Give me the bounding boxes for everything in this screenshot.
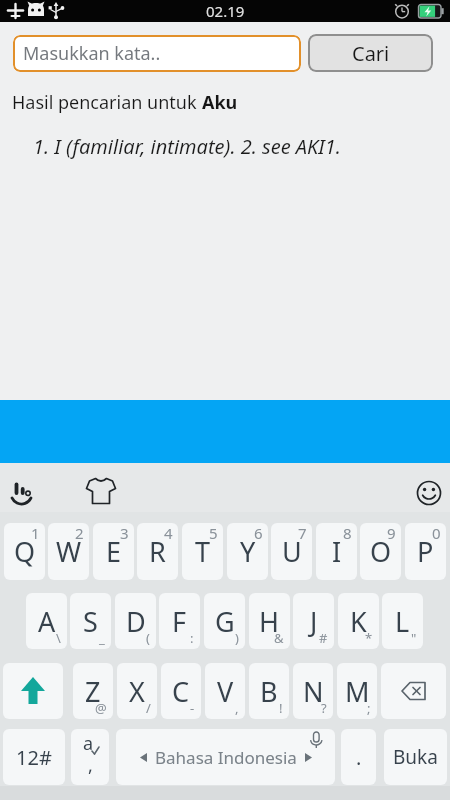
button[interactable]: Cari <box>308 34 433 72</box>
staticText: 4 <box>164 523 173 543</box>
staticText: # <box>319 629 328 647</box>
staticText: * <box>365 629 373 647</box>
button[interactable]: J <box>293 593 334 649</box>
staticText: 1 <box>31 523 40 543</box>
staticText: ? <box>321 699 327 717</box>
button[interactable]: L <box>382 593 423 649</box>
button[interactable]: K <box>338 593 379 649</box>
staticText: B <box>260 673 278 710</box>
staticText: ; <box>367 699 371 717</box>
staticText: X <box>129 673 145 710</box>
button[interactable]: C <box>161 663 201 719</box>
button[interactable]: N <box>293 663 333 719</box>
button[interactable]: V <box>205 663 245 719</box>
button[interactable]: U <box>271 523 312 580</box>
staticText: 2 <box>75 523 84 543</box>
button[interactable]: X <box>117 663 157 719</box>
staticText: 02.19 <box>206 1 245 21</box>
staticText: P <box>417 533 434 570</box>
staticText: 0 <box>432 523 441 543</box>
staticText: Hasil pencarian untuk <box>12 90 202 115</box>
staticText: K <box>350 603 367 640</box>
staticText: 6 <box>254 523 263 543</box>
staticText: 1. I (familiar, intimate). 2. see AKI1. <box>33 133 341 160</box>
staticText: 8 <box>343 523 352 543</box>
staticText: " <box>411 629 417 647</box>
staticText: \ <box>56 629 61 647</box>
button[interactable]: O <box>360 523 401 580</box>
staticText: S <box>83 603 98 640</box>
staticText: : <box>190 629 194 647</box>
staticText: M <box>345 673 370 710</box>
button[interactable]: Y <box>227 523 268 580</box>
button[interactable]: I <box>316 523 357 580</box>
staticText: Aku <box>202 90 238 115</box>
button[interactable]: Z <box>73 663 113 719</box>
staticText: F <box>172 603 187 640</box>
button[interactable]: G <box>204 593 245 649</box>
button[interactable]: E <box>93 523 134 580</box>
button[interactable]: M <box>337 663 377 719</box>
button[interactable]: Buka <box>384 729 447 785</box>
staticText: E <box>106 533 122 570</box>
staticText: R <box>149 533 166 570</box>
button[interactable]: F <box>159 593 200 649</box>
staticText: ! <box>279 699 283 717</box>
button[interactable]: Bahasa Indonesia <box>116 729 335 785</box>
staticText: _ <box>99 629 105 647</box>
staticText: @ <box>95 699 107 717</box>
staticText: ( <box>146 629 150 647</box>
staticText: T <box>195 533 211 570</box>
staticText: & <box>274 629 284 647</box>
staticText: O <box>370 533 392 570</box>
staticText: V <box>217 673 234 710</box>
button[interactable]: S <box>70 593 111 649</box>
button[interactable]: T <box>182 523 223 580</box>
button[interactable]: . <box>341 729 376 785</box>
staticText: D <box>126 603 146 640</box>
staticText: Cari <box>352 40 390 67</box>
button[interactable]: R <box>137 523 178 580</box>
staticText: . <box>356 744 362 771</box>
staticText: 5 <box>209 523 218 543</box>
staticText: A <box>38 603 56 640</box>
staticText: 12# <box>16 744 52 771</box>
staticText: Z <box>85 673 101 710</box>
button[interactable]: 12# <box>3 729 65 785</box>
button[interactable]: B <box>249 663 289 719</box>
button[interactable]: A <box>26 593 67 649</box>
button[interactable] <box>3 663 63 719</box>
staticText: I <box>332 533 342 570</box>
staticText: Buka <box>393 744 438 770</box>
button[interactable]: Q <box>4 523 45 580</box>
staticText: W <box>56 533 82 570</box>
button[interactable]: a <box>71 729 109 785</box>
staticText: Q <box>14 533 36 570</box>
staticText: 3 <box>120 523 129 543</box>
button[interactable]: Masukkan kata.. <box>13 35 301 72</box>
button[interactable]: P <box>405 523 446 580</box>
button[interactable]: W <box>48 523 89 580</box>
button[interactable]: H <box>249 593 290 649</box>
staticText: 9 <box>387 523 396 543</box>
button[interactable] <box>381 663 446 719</box>
staticText: , <box>235 699 239 717</box>
staticText: Masukkan kata.. <box>23 41 161 66</box>
staticText: a <box>83 731 94 756</box>
staticText: , <box>88 753 93 778</box>
staticText: U <box>282 533 302 570</box>
staticText: Bahasa Indonesia <box>155 746 297 769</box>
staticText: Y <box>240 533 256 570</box>
staticText: N <box>303 673 324 710</box>
staticText: 7 <box>298 523 307 543</box>
button[interactable]: D <box>115 593 156 649</box>
staticText: - <box>190 699 195 717</box>
staticText: J <box>310 603 318 640</box>
staticText: C <box>172 673 190 710</box>
staticText: / <box>146 699 151 717</box>
staticText: L <box>395 603 410 640</box>
staticText: H <box>259 603 280 640</box>
staticText: ) <box>235 629 239 647</box>
staticText: G <box>215 603 235 640</box>
